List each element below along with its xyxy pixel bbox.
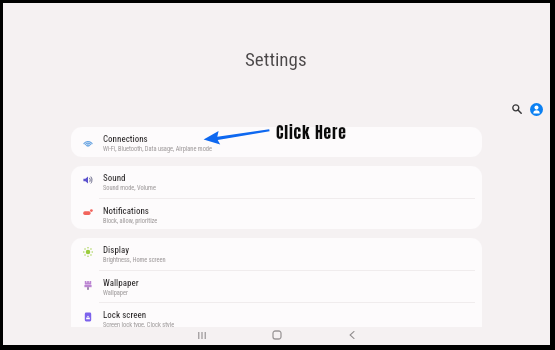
staticText: Sound [103,173,126,184]
button[interactable]: Notifications [71,199,482,229]
staticText: Connections [103,134,148,145]
staticText: Wi-Fi, Bluetooth, Data usage, Airplane m… [103,145,212,152]
staticText: Sound mode, Volume [103,184,156,191]
staticText: Wallpaper [103,278,139,289]
staticText: Lock screen [103,310,147,321]
button[interactable]: Search [505,97,529,121]
staticText: Display [103,245,130,256]
button[interactable]: Recents [191,324,213,346]
button[interactable]: Sound [71,166,482,198]
button[interactable]: Home [266,324,288,346]
staticText: Click Here [276,121,347,145]
button[interactable]: Display [71,238,482,270]
staticText: Brightness, Home screen [103,256,166,263]
button[interactable]: Wallpaper [71,271,482,302]
staticText: Screen lock type, Clock style [103,321,175,327]
button[interactable]: Lock screen [71,303,482,327]
button[interactable]: Samsung account [524,97,548,121]
button[interactable]: Connections [71,127,482,157]
staticText: Block, allow, prioritize [103,217,158,224]
staticText: Wallpaper [103,289,128,296]
staticText: Notifications [103,206,149,217]
staticText: Settings [245,48,307,70]
button[interactable]: Back [341,324,363,346]
